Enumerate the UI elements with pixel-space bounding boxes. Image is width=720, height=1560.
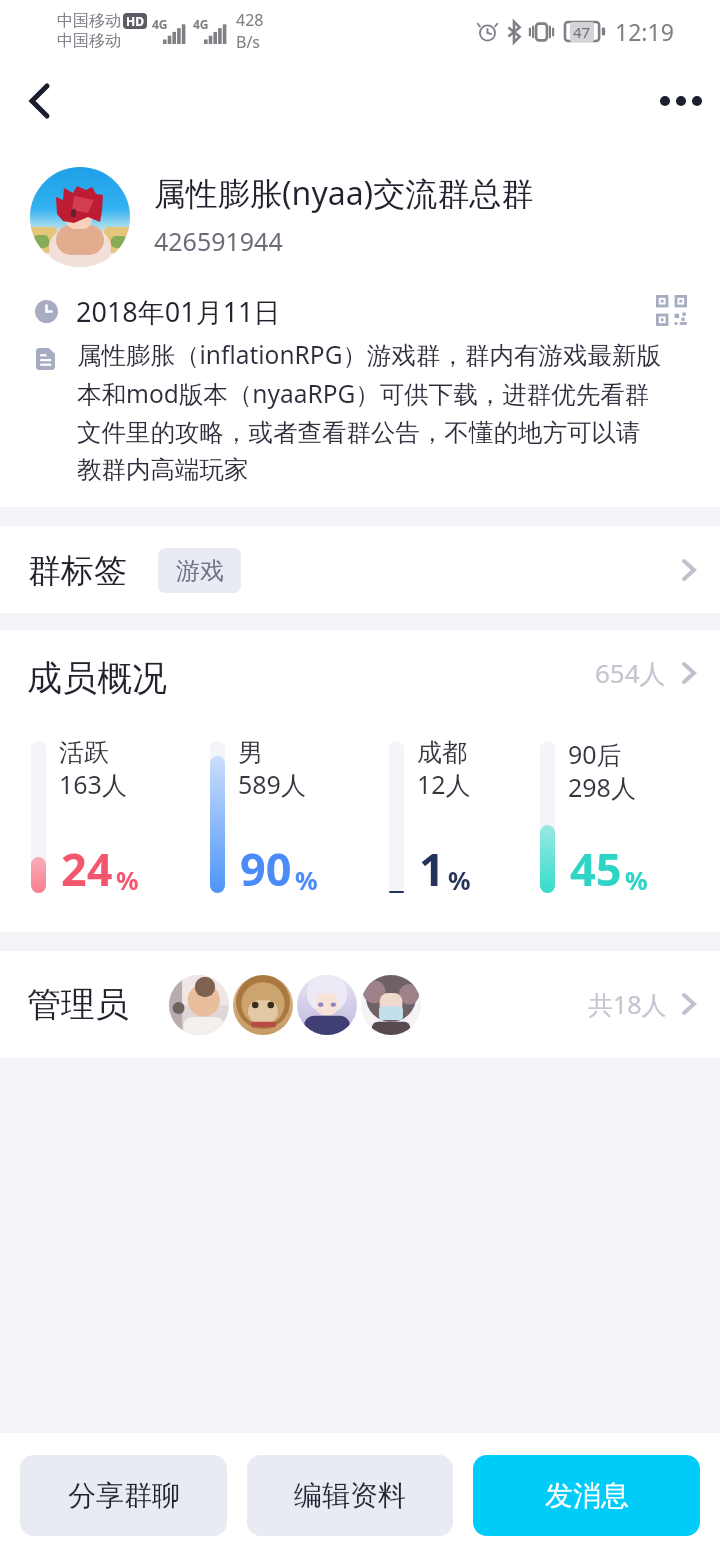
staticText: % bbox=[295, 863, 318, 897]
staticText: 4G bbox=[193, 16, 209, 32]
staticText: 成员概况 bbox=[27, 656, 167, 700]
staticText: 成都 bbox=[417, 737, 467, 768]
button[interactable]: More options bbox=[642, 62, 720, 140]
button[interactable]: Back bbox=[0, 62, 78, 140]
staticText: 男 bbox=[238, 737, 263, 768]
staticText: 中国移动 bbox=[57, 31, 121, 51]
staticText: 589人 bbox=[238, 767, 306, 801]
staticText: 管理员 bbox=[27, 983, 129, 1026]
staticText: 分享群聊 bbox=[68, 1478, 180, 1513]
staticText: 428 bbox=[236, 9, 264, 31]
staticText: 发消息 bbox=[545, 1478, 629, 1513]
staticText: 编辑资料 bbox=[294, 1478, 406, 1513]
staticText: % bbox=[116, 863, 139, 897]
staticText: 属性膨胀(nyaa)交流群总群 bbox=[154, 171, 534, 215]
staticText: 45 bbox=[570, 838, 622, 899]
button[interactable]: 管理员 bbox=[0, 951, 720, 1058]
staticText: 共18人 bbox=[588, 987, 667, 1021]
staticText: 12:19 bbox=[615, 16, 674, 47]
button[interactable]: 群标签 bbox=[0, 526, 720, 613]
staticText: 24 bbox=[61, 838, 113, 899]
staticText: 1 bbox=[419, 838, 445, 899]
staticText: 298人 bbox=[568, 770, 636, 804]
staticText: 47 bbox=[573, 22, 591, 42]
button[interactable]: 发消息 bbox=[473, 1455, 700, 1536]
staticText: 4G bbox=[152, 16, 168, 32]
staticText: 654人 bbox=[595, 655, 666, 691]
staticText: % bbox=[625, 863, 648, 897]
staticText: 163人 bbox=[59, 767, 127, 801]
staticText: 90后 bbox=[568, 737, 622, 771]
staticText: HD bbox=[126, 13, 144, 29]
staticText: 群标签 bbox=[28, 550, 127, 592]
button[interactable]: 成员概况 bbox=[0, 630, 720, 726]
staticText: 426591944 bbox=[154, 224, 283, 258]
staticText: B/s bbox=[236, 31, 261, 53]
button[interactable]: 分享群聊 bbox=[20, 1455, 227, 1536]
staticText: % bbox=[448, 863, 471, 897]
staticText: 游戏 bbox=[176, 556, 224, 586]
staticText: 2018年01月11日 bbox=[76, 293, 281, 330]
staticText: 属性膨胀（inflationRPG）游戏群，群内有游戏最新版本和mod版本（ny… bbox=[77, 338, 662, 485]
staticText: 12人 bbox=[417, 767, 471, 801]
button[interactable]: 编辑资料 bbox=[247, 1455, 453, 1536]
staticText: 90 bbox=[240, 838, 292, 899]
button[interactable]: 属性膨胀(nyaa)交流群总群 bbox=[0, 140, 720, 285]
staticText: 中国移动 bbox=[57, 11, 121, 31]
button[interactable]: QR code bbox=[643, 284, 699, 337]
staticText: 活跃 bbox=[59, 737, 109, 768]
